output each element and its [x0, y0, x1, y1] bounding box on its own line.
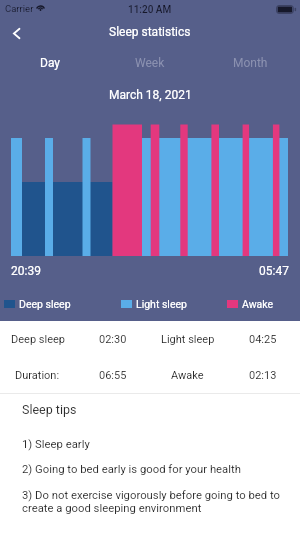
staticText: 3) Do not exercise vigorously before goi… [22, 489, 286, 515]
button[interactable]: Back [0, 20, 32, 46]
staticText: Month [233, 56, 268, 70]
staticText: March 18, 2021 [109, 88, 192, 102]
staticText: 02:30 [99, 333, 127, 346]
staticText: 2) Going to bed early is good for your h… [22, 463, 241, 476]
staticText: Light sleep [161, 333, 215, 346]
button[interactable]: Month [200, 50, 300, 76]
staticText: Carrier [5, 3, 34, 14]
staticText: Light sleep [136, 298, 187, 310]
button[interactable]: Week [100, 50, 200, 76]
staticText: 06:55 [99, 369, 127, 382]
staticText: Sleep statistics [109, 25, 191, 39]
staticText: Week [135, 56, 165, 70]
staticText: Deep sleep [19, 298, 71, 310]
staticText: 02:13 [249, 369, 277, 382]
staticText: Awake [242, 298, 274, 310]
staticText: Day [40, 56, 60, 70]
button[interactable]: Day [0, 50, 100, 76]
staticText: 05:47 [259, 264, 289, 278]
staticText: 20:39 [11, 264, 41, 278]
staticText: 11:20 AM [128, 4, 172, 16]
staticText: Awake [171, 369, 204, 382]
staticText: Sleep tips [22, 402, 77, 417]
staticText: 04:25 [249, 333, 277, 346]
staticText: Duration: [15, 369, 60, 382]
staticText: 1) Sleep early [22, 438, 90, 451]
staticText: Deep sleep [11, 333, 65, 346]
